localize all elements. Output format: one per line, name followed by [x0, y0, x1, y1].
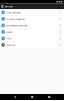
button[interactable]: Back — [13, 95, 17, 99]
button[interactable]: Notification Settings — [0, 22, 64, 28]
button[interactable]: Home — [30, 95, 34, 99]
button[interactable]: Recent apps — [47, 95, 51, 99]
staticText: Notification Settings — [6, 24, 27, 27]
button[interactable]: About — [0, 29, 64, 35]
button[interactable]: Back — [0, 4, 4, 9]
button[interactable]: Help — [0, 35, 64, 42]
button[interactable]: Sign Out — [0, 42, 64, 48]
staticText: User Settings — [6, 11, 20, 14]
staticText: Help — [6, 37, 11, 40]
staticText: Privacy & Sharing — [6, 17, 24, 20]
staticText: Settings — [4, 5, 12, 8]
button[interactable]: Privacy & Sharing — [0, 16, 64, 22]
staticText: Sign Out — [6, 43, 15, 46]
button[interactable]: User Settings — [0, 9, 64, 15]
staticText: About — [6, 30, 12, 33]
